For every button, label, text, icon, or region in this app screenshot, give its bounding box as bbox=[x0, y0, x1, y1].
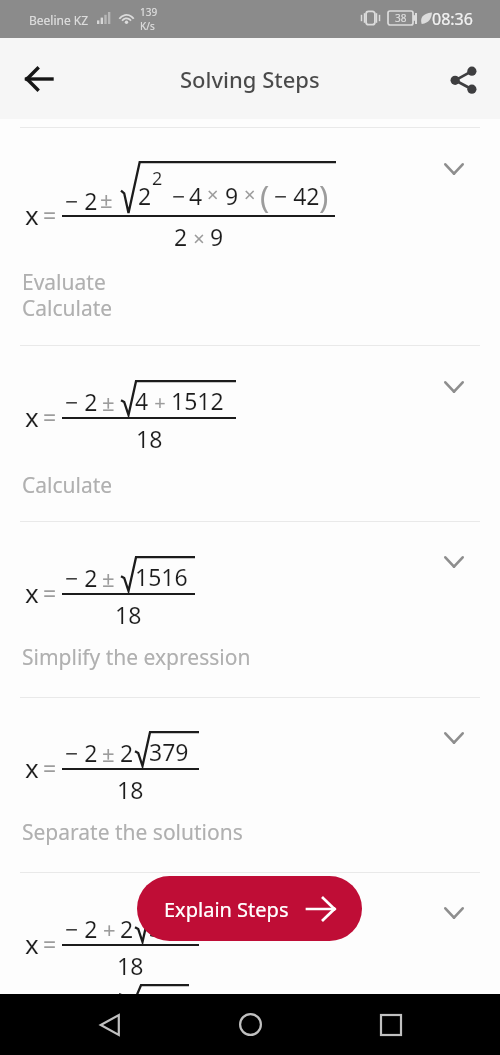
button[interactable]: Expand step bbox=[431, 364, 477, 410]
staticText: − 2 bbox=[65, 386, 98, 417]
staticText: 2 bbox=[138, 180, 152, 211]
button[interactable]: Back bbox=[12, 52, 66, 106]
staticText: − 42 bbox=[274, 180, 320, 211]
staticText: Calculate bbox=[22, 471, 113, 500]
staticText: 18 bbox=[115, 599, 142, 630]
staticText: ) bbox=[319, 175, 329, 217]
button[interactable]: Expand step bbox=[431, 715, 477, 761]
staticText: Beeline KZ bbox=[29, 12, 89, 28]
staticText: − bbox=[172, 180, 186, 211]
staticText: = bbox=[43, 401, 57, 432]
button[interactable]: Expand step bbox=[431, 539, 477, 585]
staticText: ± bbox=[102, 563, 115, 593]
staticText: 18 bbox=[117, 950, 144, 981]
staticText: 2 bbox=[152, 166, 163, 191]
staticText: Explain Steps bbox=[164, 896, 289, 923]
staticText: 38 bbox=[395, 11, 407, 25]
button[interactable] bbox=[0, 346, 500, 521]
staticText: ± bbox=[102, 387, 115, 417]
button[interactable]: Explain Steps bbox=[137, 876, 362, 941]
staticText: = bbox=[43, 752, 57, 783]
staticText: 18 bbox=[136, 423, 163, 454]
staticText: × bbox=[207, 181, 219, 208]
button[interactable]: Expand step bbox=[431, 890, 477, 936]
staticText: ± bbox=[102, 738, 115, 768]
staticText: + bbox=[103, 914, 116, 944]
staticText: x bbox=[25, 750, 39, 785]
staticText: ± bbox=[100, 184, 113, 214]
staticText: 9 bbox=[210, 221, 224, 252]
staticText: 08:36 bbox=[432, 8, 473, 30]
button[interactable]: Share bbox=[438, 54, 488, 104]
staticText: 1512 bbox=[171, 385, 224, 416]
staticText: 2 bbox=[120, 737, 134, 768]
button[interactable]: Expand step bbox=[431, 146, 477, 192]
staticText: + bbox=[149, 389, 171, 416]
staticText: x bbox=[25, 926, 39, 961]
staticText: x bbox=[25, 575, 39, 610]
staticText: − 2 bbox=[65, 737, 98, 768]
button[interactable] bbox=[0, 522, 500, 697]
staticText: − 2 bbox=[65, 913, 98, 944]
staticText: × bbox=[188, 225, 210, 252]
staticText: 9 bbox=[225, 180, 239, 211]
staticText: = bbox=[43, 928, 57, 959]
staticText: 18 bbox=[117, 774, 144, 805]
staticText: x bbox=[25, 399, 39, 434]
staticText: 1516 bbox=[135, 561, 188, 592]
button[interactable]: Home bbox=[220, 994, 281, 1055]
staticText: − 2 bbox=[65, 185, 98, 216]
staticText: 379 bbox=[149, 912, 189, 943]
staticText: 4 bbox=[189, 180, 203, 211]
staticText: 139 bbox=[140, 5, 158, 19]
staticText: ( bbox=[260, 175, 270, 217]
staticText: = bbox=[43, 577, 57, 608]
staticText: Evaluate bbox=[22, 268, 106, 297]
staticText: Calculate bbox=[22, 294, 113, 323]
staticText: − 2 bbox=[65, 562, 98, 593]
staticText: 379 bbox=[149, 736, 189, 767]
staticText: K/s bbox=[140, 19, 155, 33]
staticText: 2 bbox=[120, 913, 134, 944]
button[interactable]: Recent apps bbox=[360, 994, 421, 1055]
staticText: Separate the solutions bbox=[22, 818, 243, 847]
staticText: Solving Steps bbox=[180, 64, 320, 94]
button[interactable]: Back bbox=[79, 994, 140, 1055]
staticText: Simplify the expression bbox=[22, 643, 251, 672]
button[interactable] bbox=[0, 698, 500, 872]
staticText: = bbox=[43, 199, 57, 230]
button[interactable] bbox=[0, 873, 500, 994]
staticText: 2 bbox=[174, 221, 188, 252]
button[interactable] bbox=[0, 128, 500, 345]
staticText: × bbox=[244, 181, 256, 208]
staticText: 4 bbox=[135, 385, 149, 416]
staticText: x bbox=[25, 197, 39, 232]
